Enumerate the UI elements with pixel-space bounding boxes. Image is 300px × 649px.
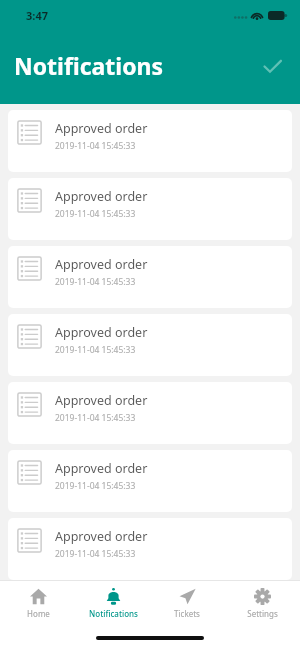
button[interactable]: Home [2, 581, 74, 626]
staticText: 2019-11-04 15:45:33 [55, 412, 136, 424]
staticText: Home [27, 608, 50, 619]
staticText: Settings [247, 608, 278, 619]
staticText: 3:47 [26, 8, 48, 23]
button[interactable]: Approved order [8, 178, 292, 240]
staticText: 2019-11-04 15:45:33 [55, 480, 136, 492]
staticText: 2019-11-04 15:45:33 [55, 208, 136, 220]
button[interactable]: Approved order [8, 450, 292, 512]
button[interactable]: Approved order [8, 246, 292, 308]
button[interactable]: Settings [226, 581, 298, 626]
staticText: 2019-11-04 15:45:33 [55, 344, 136, 356]
button[interactable]: Approved order [8, 382, 292, 444]
staticText: Notifications [14, 50, 164, 81]
staticText: Approved order [55, 256, 148, 273]
button[interactable]: Approved order [8, 518, 292, 580]
staticText: Approved order [55, 324, 148, 341]
staticText: Approved order [55, 188, 148, 205]
button[interactable]: Notifications [77, 581, 149, 626]
staticText: Approved order [55, 392, 148, 409]
button[interactable]: Mark all as read [252, 46, 292, 86]
button[interactable]: Tickets [151, 581, 223, 626]
staticText: Approved order [55, 528, 148, 545]
staticText: 2019-11-04 15:45:33 [55, 548, 136, 560]
staticText: Notifications [89, 608, 138, 619]
staticText: Tickets [174, 608, 200, 619]
staticText: Approved order [55, 120, 148, 137]
staticText: 2019-11-04 15:45:33 [55, 140, 136, 152]
staticText: 2019-11-04 15:45:33 [55, 276, 136, 288]
staticText: Approved order [55, 460, 148, 477]
button[interactable]: Approved order [8, 314, 292, 376]
button[interactable]: Approved order [8, 110, 292, 172]
